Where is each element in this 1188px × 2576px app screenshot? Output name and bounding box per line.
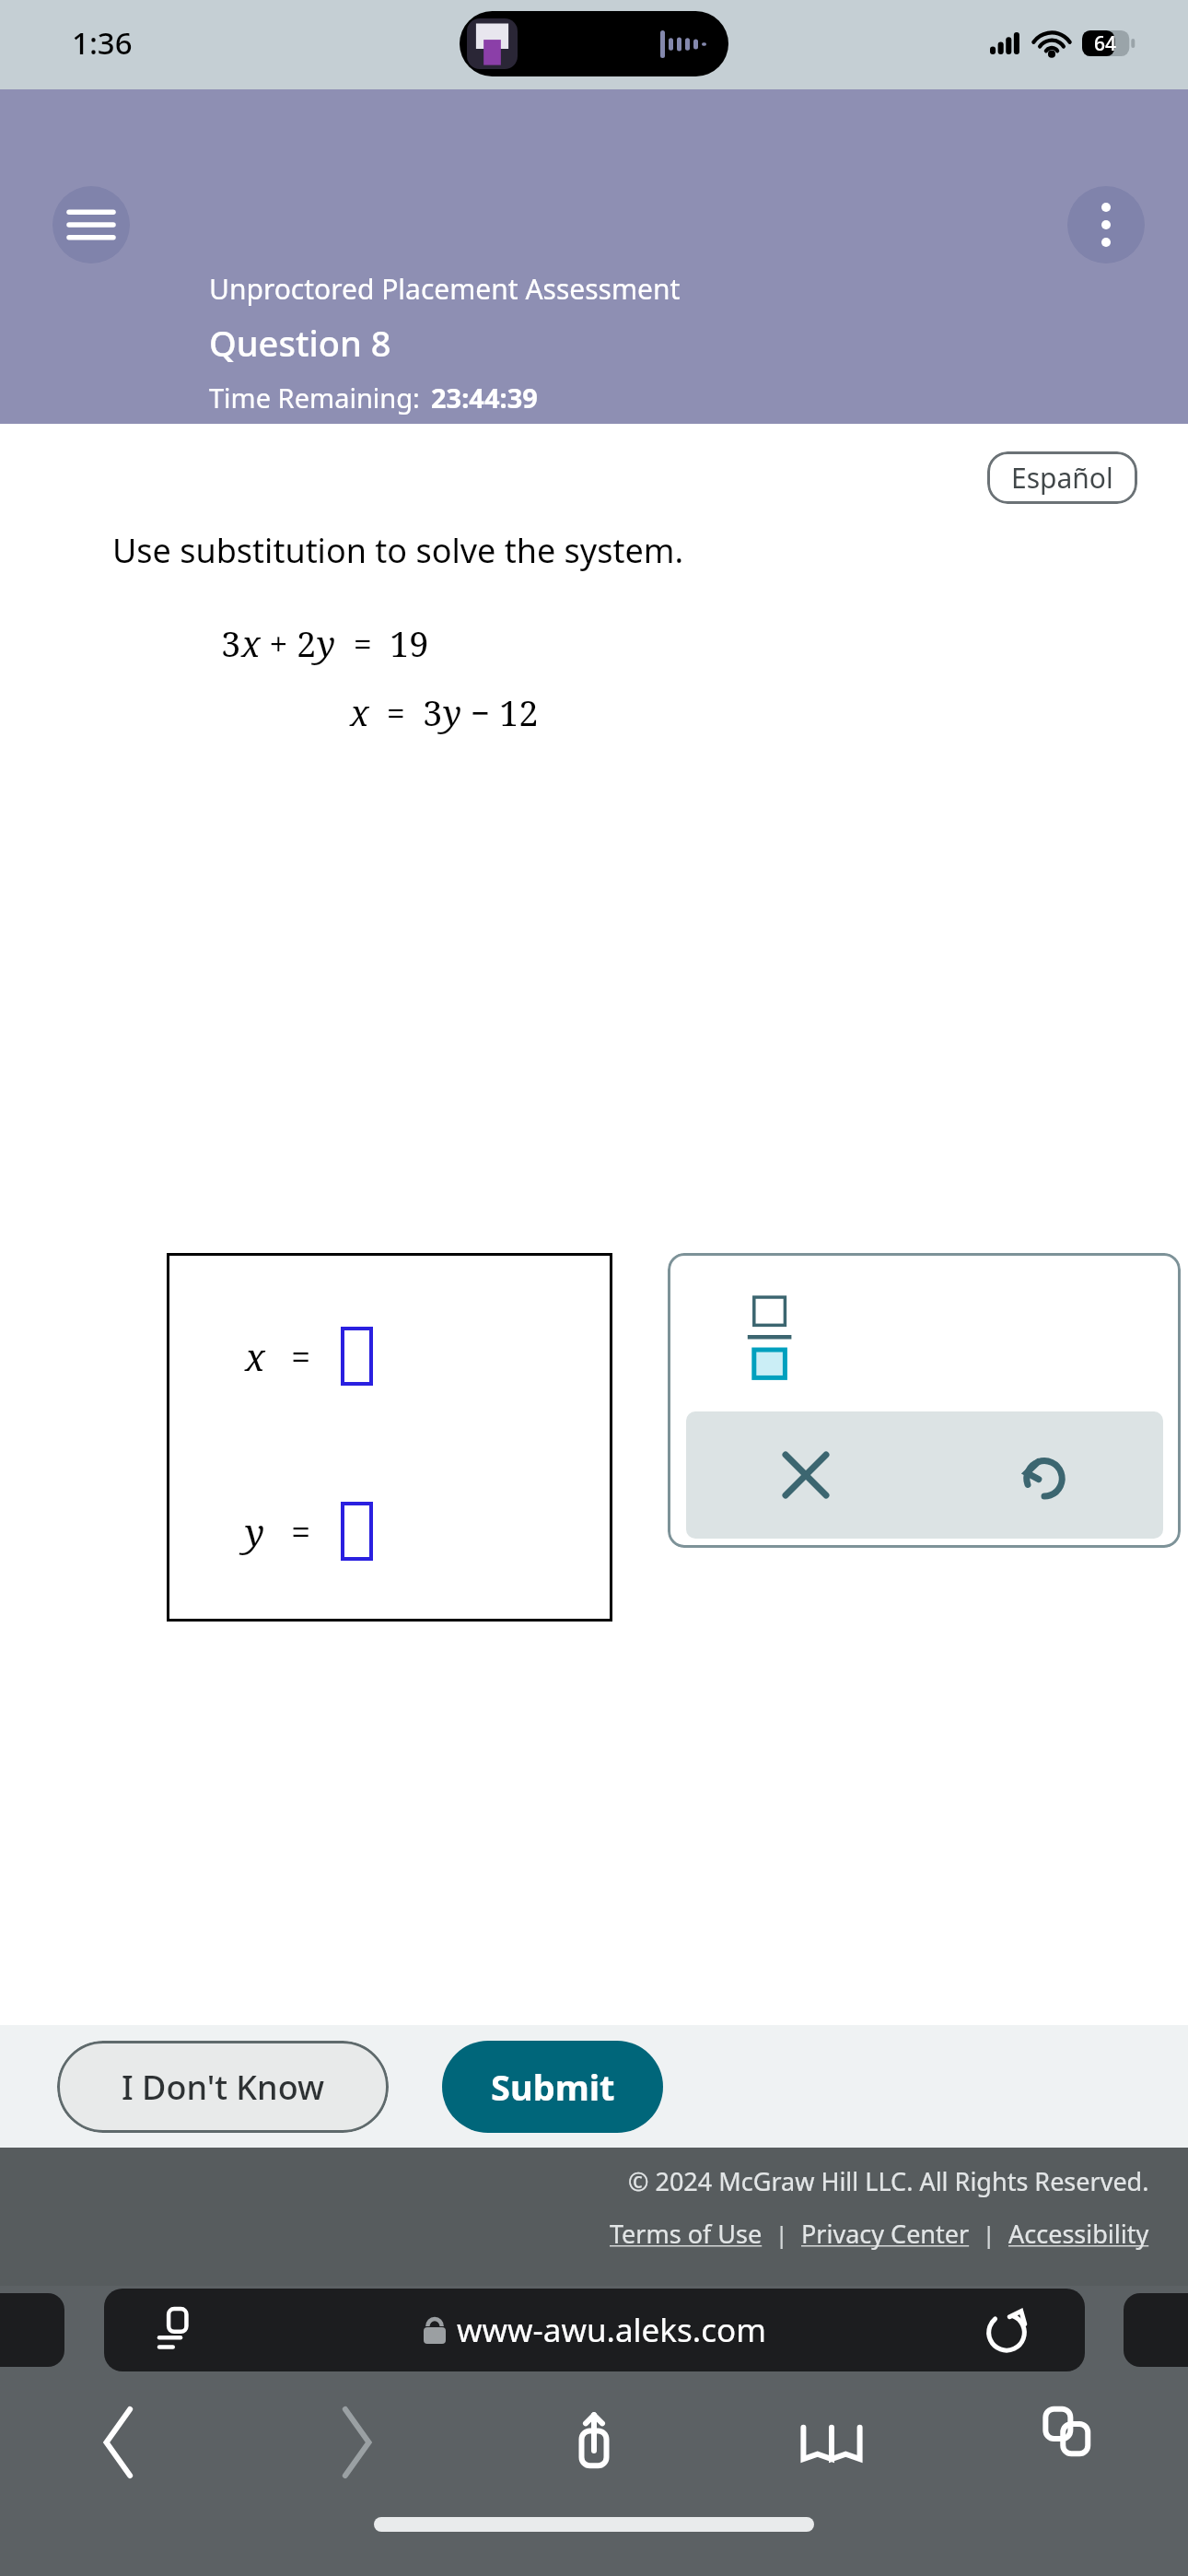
staticText: © 2024 McGraw Hill LLC. All Rights Reser… bbox=[628, 2164, 1149, 2198]
button[interactable]: Accessibility bbox=[1008, 2217, 1149, 2251]
staticText: | bbox=[970, 2218, 1008, 2250]
staticText: Accessibility bbox=[1008, 2217, 1149, 2251]
staticText: Unproctored Placement Assessment bbox=[209, 270, 681, 308]
staticText: Español bbox=[1011, 459, 1113, 497]
button[interactable]: Fraction bbox=[749, 1297, 800, 1382]
staticText: I Don't Know bbox=[122, 2065, 324, 2110]
staticText: y bbox=[443, 688, 462, 736]
staticText: Terms of Use bbox=[610, 2217, 763, 2251]
button[interactable]: Page settings bbox=[104, 2289, 1085, 2371]
staticText: Use substitution to solve the system. bbox=[112, 528, 684, 573]
staticText: x bbox=[245, 1331, 265, 1381]
button[interactable]: Page settings bbox=[159, 2309, 202, 2351]
staticText: 1:36 bbox=[72, 22, 133, 64]
staticText: 2 bbox=[297, 619, 317, 667]
staticText: www-awu.aleks.com bbox=[457, 2308, 766, 2352]
staticText: Time Remaining: bbox=[209, 380, 420, 416]
button[interactable]: Back bbox=[0, 2373, 238, 2512]
button[interactable]: Undo bbox=[925, 1411, 1163, 1539]
staticText: y bbox=[245, 1506, 265, 1556]
button[interactable]: More options bbox=[1067, 186, 1145, 263]
button[interactable]: Share bbox=[475, 2373, 713, 2512]
button[interactable]: I Don't Know bbox=[57, 2041, 389, 2133]
button[interactable]: Tabs bbox=[950, 2373, 1188, 2512]
button[interactable]: x bbox=[167, 1253, 612, 1622]
staticText: = bbox=[291, 1507, 311, 1555]
staticText: x bbox=[350, 688, 369, 736]
button[interactable]: Clear bbox=[686, 1411, 925, 1539]
staticText: Submit bbox=[491, 2063, 615, 2111]
button[interactable]: Reload bbox=[985, 2309, 1028, 2351]
staticText: 3 bbox=[221, 619, 241, 667]
button[interactable]: Español bbox=[987, 451, 1137, 504]
button[interactable]: Terms of Use bbox=[610, 2217, 763, 2251]
staticText: 12 bbox=[499, 688, 539, 736]
staticText: + bbox=[261, 621, 297, 666]
button[interactable]: Menu bbox=[52, 186, 130, 263]
staticText: = bbox=[291, 1332, 311, 1380]
button[interactable]: Forward bbox=[238, 2373, 475, 2512]
button[interactable]: Bookmarks bbox=[713, 2373, 950, 2512]
staticText: | bbox=[763, 2218, 801, 2250]
staticText: Privacy Center bbox=[801, 2217, 970, 2251]
staticText: = bbox=[369, 690, 423, 735]
button[interactable]: Submit bbox=[442, 2041, 663, 2133]
staticText: x bbox=[241, 619, 261, 667]
staticText: 64 bbox=[1094, 30, 1117, 56]
button[interactable]: Privacy Center bbox=[801, 2217, 970, 2251]
staticText: y bbox=[317, 619, 336, 667]
staticText: 19 bbox=[390, 619, 429, 667]
staticText: = bbox=[336, 621, 390, 666]
staticText: 3 bbox=[423, 688, 443, 736]
staticText: Question 8 bbox=[209, 319, 391, 367]
staticText: 23:44:39 bbox=[431, 380, 538, 416]
staticText: − bbox=[462, 690, 499, 735]
